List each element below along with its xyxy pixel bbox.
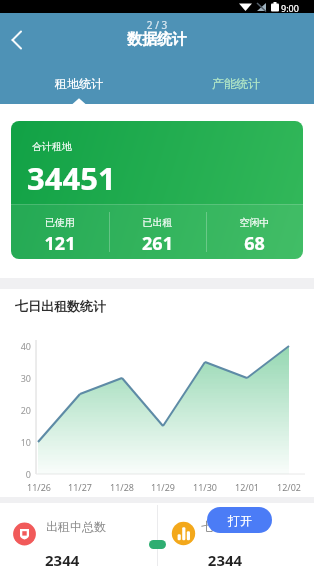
staticText: 0 (6, 468, 31, 480)
staticText: 11/28 (105, 481, 139, 493)
button[interactable]: 打开 (207, 507, 272, 533)
staticText: 12/02 (272, 481, 306, 493)
button[interactable]: 产能统计 (157, 62, 314, 104)
staticText: 121 (11, 231, 109, 256)
staticText: 2344 (205, 550, 245, 570)
button[interactable] (157, 503, 314, 581)
staticText: 2 / 3 (0, 18, 314, 32)
staticText: 租地统计 (55, 76, 103, 91)
staticText: 空闲中 (206, 216, 303, 229)
staticText: 261 (109, 231, 206, 256)
button[interactable] (0, 503, 157, 581)
staticText: 数据统计 (0, 30, 314, 49)
staticText: 七日出租数 (201, 519, 261, 534)
staticText: 20 (6, 404, 31, 416)
staticText: 11/29 (146, 481, 180, 493)
staticText: 2344 (45, 550, 80, 570)
staticText: 11/26 (22, 481, 56, 493)
staticText: 9:00 (281, 2, 299, 14)
staticText: 出租中总数 (46, 519, 106, 534)
staticText: 10 (6, 436, 31, 448)
staticText: 合计租地 (32, 140, 72, 153)
button[interactable]: 合计租地 (11, 121, 303, 259)
staticText: 12/01 (230, 481, 264, 493)
staticText: 已使用 (11, 216, 109, 229)
staticText: 30 (6, 372, 31, 384)
staticText: 打开 (228, 513, 252, 528)
staticText: 34451 (27, 157, 116, 199)
button[interactable]: 租地统计 (0, 62, 157, 104)
button[interactable] (4, 26, 36, 54)
staticText: 已出租 (109, 216, 206, 229)
staticText: 11/27 (63, 481, 97, 493)
staticText: 七日出租数统计 (15, 298, 106, 314)
staticText: 40 (6, 340, 31, 352)
staticText: 11/30 (188, 481, 222, 493)
staticText: 产能统计 (212, 76, 260, 91)
staticText: 68 (206, 231, 303, 256)
